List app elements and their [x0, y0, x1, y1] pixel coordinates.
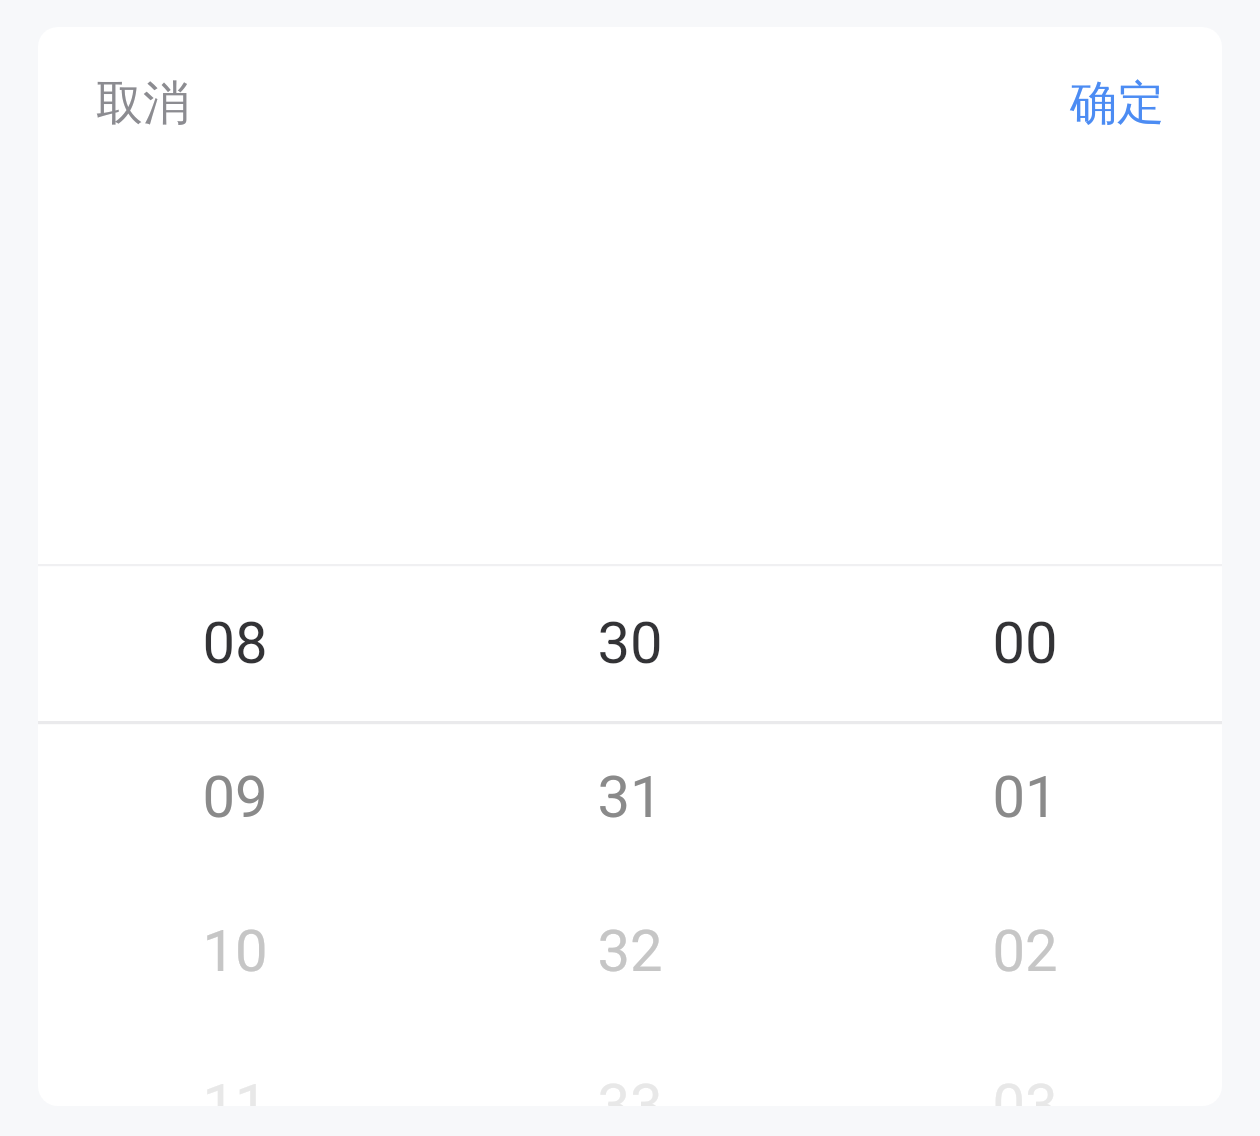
staticText: 03: [992, 1071, 1058, 1106]
button[interactable]: 09: [38, 720, 432, 874]
button[interactable]: 30: [432, 566, 827, 720]
button[interactable]: 01: [827, 720, 1222, 874]
button[interactable]: 确定: [1062, 64, 1172, 143]
staticText: 09: [202, 763, 268, 831]
staticText: 02: [992, 917, 1058, 985]
button[interactable]: 32: [432, 874, 827, 1028]
staticText: 31: [597, 763, 663, 831]
button[interactable]: 取消: [88, 64, 198, 143]
staticText: 01: [992, 763, 1058, 831]
button[interactable]: 31: [432, 720, 827, 874]
button[interactable]: 10: [38, 874, 432, 1028]
staticText: 32: [597, 917, 663, 985]
staticText: 00: [992, 609, 1058, 677]
staticText: 10: [202, 917, 268, 985]
staticText: 确定: [1070, 74, 1164, 133]
button[interactable]: 00: [827, 566, 1222, 720]
staticText: 11: [202, 1071, 268, 1106]
staticText: 30: [597, 609, 663, 677]
staticText: 08: [202, 609, 268, 677]
staticText: 取消: [96, 74, 190, 133]
button[interactable]: 02: [827, 874, 1222, 1028]
staticText: 33: [597, 1071, 663, 1106]
button[interactable]: 08: [38, 566, 432, 720]
